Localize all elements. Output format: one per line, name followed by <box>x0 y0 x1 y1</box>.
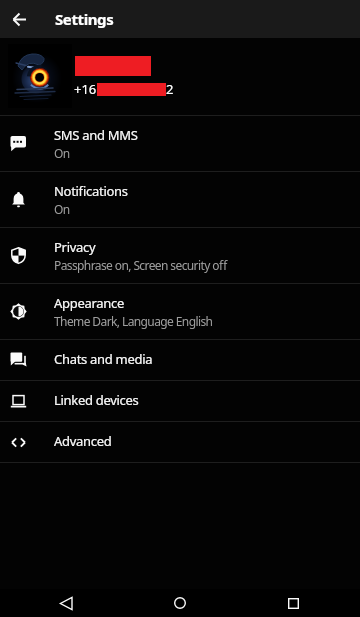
staticText: 2 <box>166 80 174 98</box>
staticText: Passphrase on, Screen security off <box>54 257 227 273</box>
button[interactable]: Chats and media <box>0 340 360 380</box>
staticText: Appearance <box>54 294 124 312</box>
staticText: SMS and MMS <box>54 126 138 144</box>
button[interactable]: Linked devices <box>0 381 360 421</box>
button[interactable] <box>269 589 317 617</box>
button[interactable]: +16 <box>0 38 360 115</box>
staticText: Notifications <box>54 182 128 200</box>
button[interactable]: Notifications <box>0 172 360 227</box>
button[interactable] <box>0 0 38 38</box>
staticText: Theme Dark, Language English <box>54 313 213 329</box>
staticText: Privacy <box>54 238 96 256</box>
button[interactable]: Advanced <box>0 422 360 462</box>
button[interactable] <box>42 589 90 617</box>
staticText: Settings <box>55 9 114 29</box>
staticText: On <box>54 201 70 217</box>
button[interactable]: Appearance <box>0 284 360 339</box>
staticText: Linked devices <box>54 391 139 409</box>
button[interactable]: SMS and MMS <box>0 116 360 171</box>
button[interactable]: Privacy <box>0 228 360 283</box>
staticText: On <box>54 145 70 161</box>
staticText: Chats and media <box>54 350 153 368</box>
staticText: +16 <box>74 80 97 98</box>
button[interactable] <box>156 589 204 617</box>
staticText: Advanced <box>54 432 112 450</box>
